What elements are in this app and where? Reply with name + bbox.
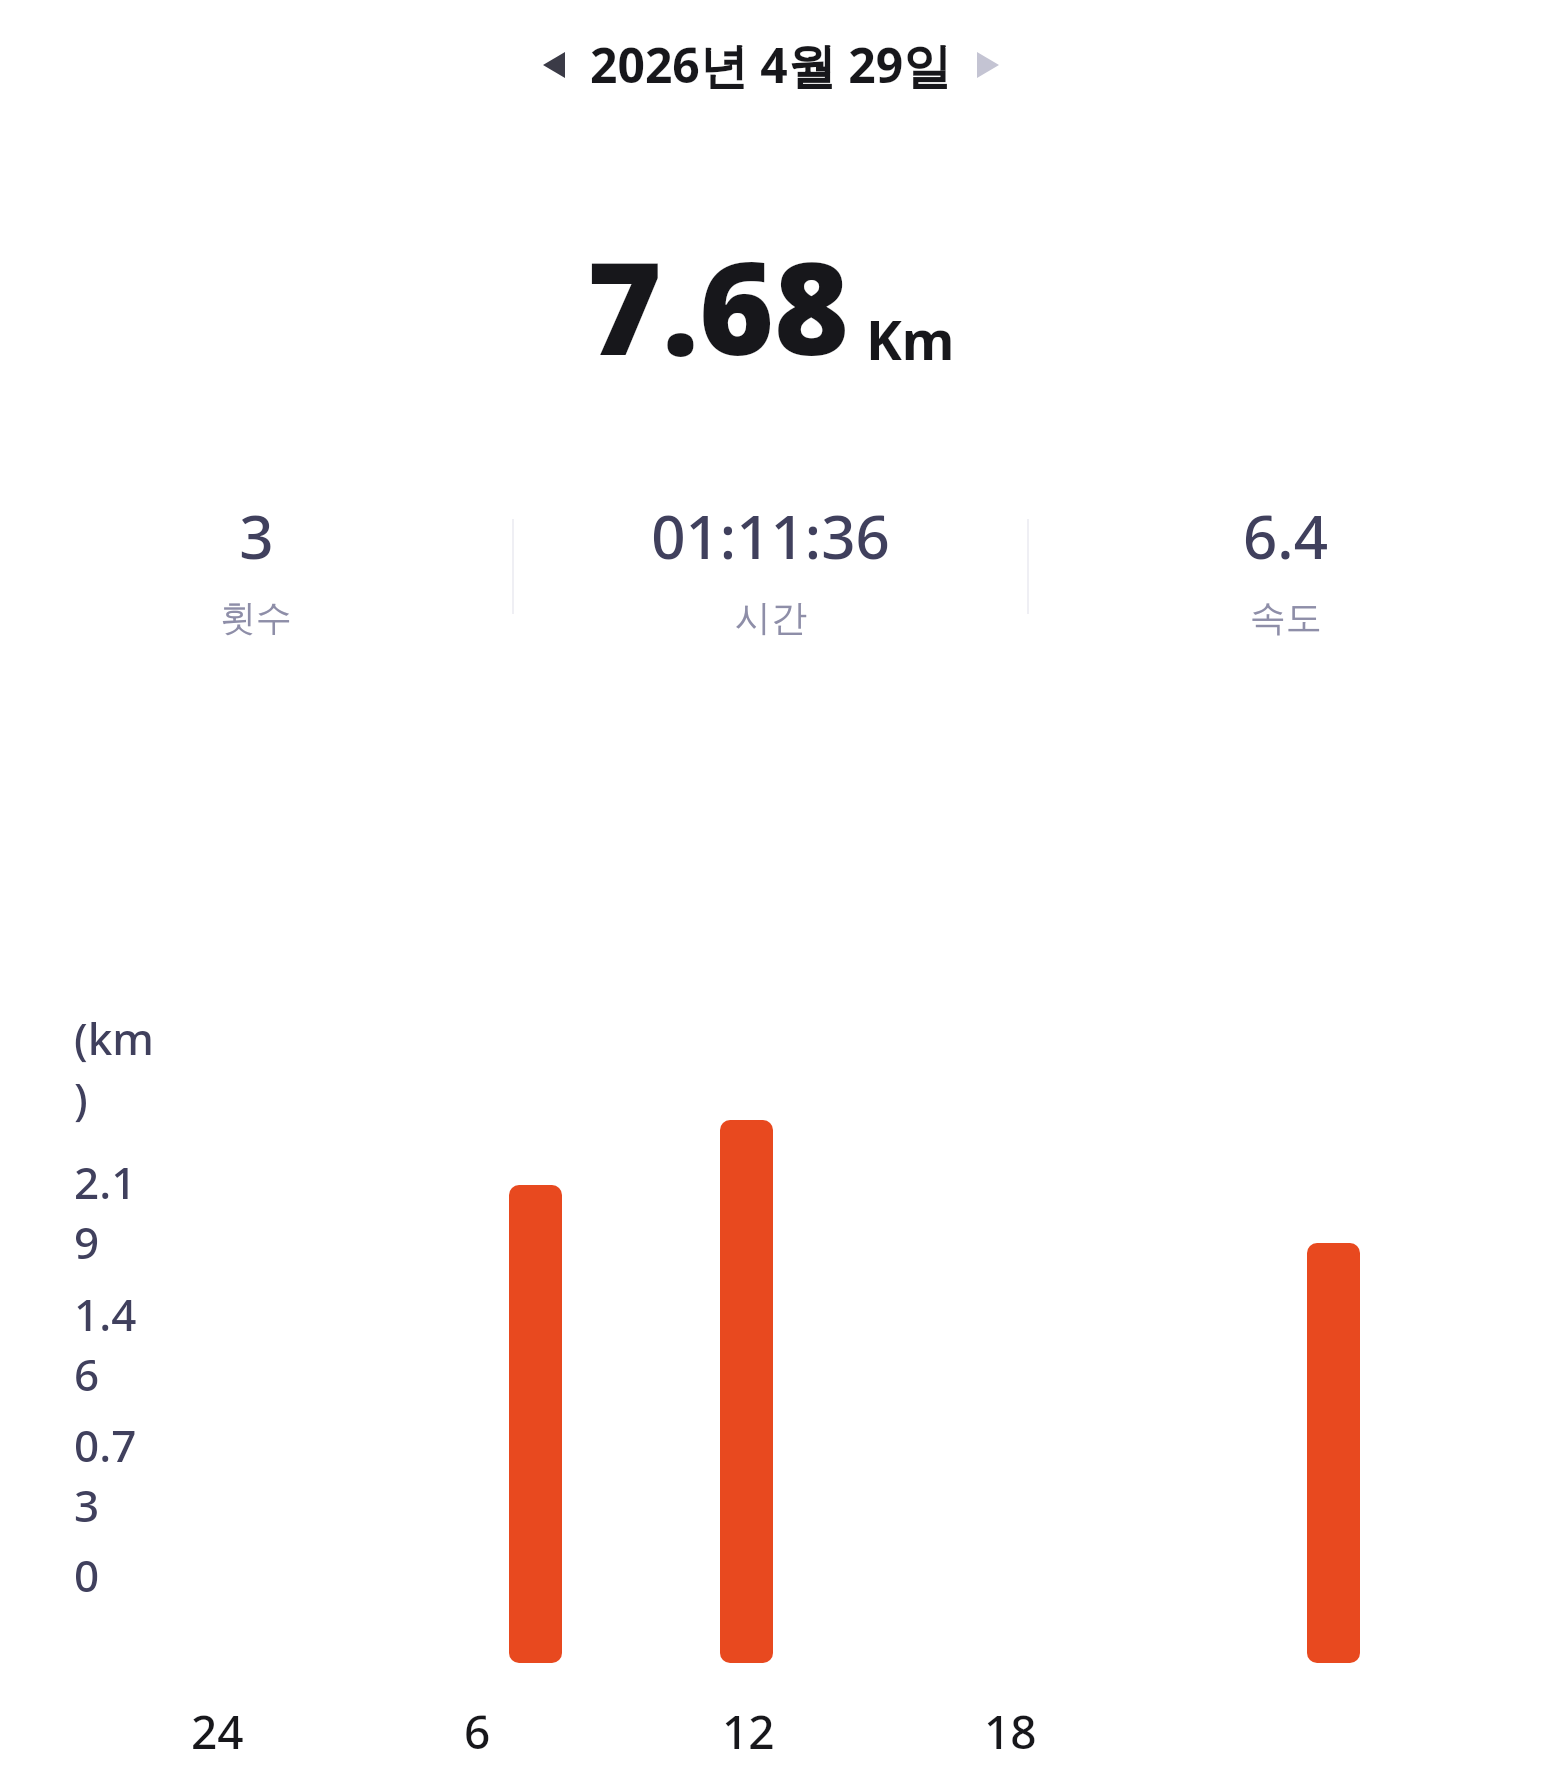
staticText: (km) (74, 1008, 160, 1128)
staticText: Km (866, 302, 955, 376)
button[interactable]: Next day (962, 39, 1014, 91)
staticText: 01:11:36 (651, 495, 890, 577)
button[interactable]: 3 (0, 495, 512, 640)
button[interactable]: Previous day (528, 39, 580, 91)
staticText: 1.46 (74, 1284, 160, 1404)
staticText: 18 (984, 1700, 1037, 1763)
staticText: 횟수 (220, 595, 292, 640)
button[interactable]: 6.4 (1029, 495, 1542, 640)
staticText: 2.19 (74, 1152, 160, 1272)
staticText: 6 (464, 1700, 491, 1763)
staticText: 3 (239, 495, 274, 577)
staticText: 6.4 (1243, 495, 1328, 577)
staticText: 2026년 4월 29일 (590, 32, 952, 98)
staticText: 0 (74, 1545, 100, 1605)
staticText: 12 (722, 1700, 775, 1763)
staticText: 24 (191, 1700, 244, 1763)
staticText: 시간 (735, 595, 807, 640)
button[interactable]: 01:11:36 (514, 495, 1027, 640)
staticText: 7.68 (587, 218, 850, 392)
staticText: 0.73 (74, 1415, 160, 1535)
staticText: 속도 (1250, 595, 1322, 640)
